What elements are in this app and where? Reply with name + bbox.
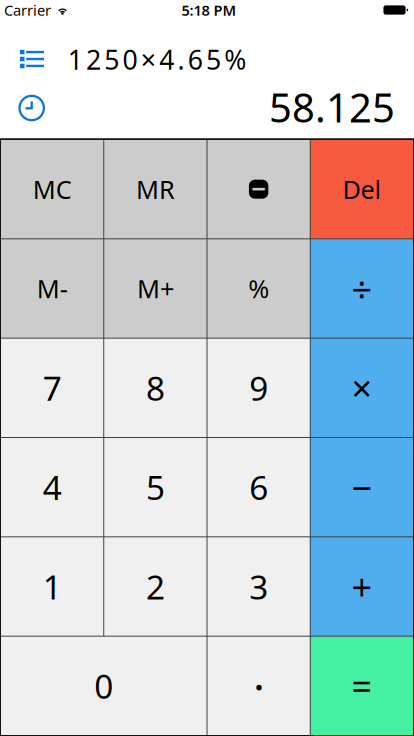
staticText: M+: [137, 272, 174, 305]
button[interactable]: 9: [207, 339, 310, 437]
staticText: 0: [94, 664, 113, 708]
staticText: =: [351, 662, 372, 710]
staticText: %: [248, 272, 269, 305]
button[interactable]: 8: [104, 339, 206, 437]
staticText: 1: [43, 564, 62, 609]
button[interactable]: ÷: [311, 239, 413, 338]
staticText: M-: [37, 272, 68, 305]
button[interactable]: MR: [104, 140, 206, 238]
button[interactable]: MC: [1, 140, 103, 238]
button[interactable]: 2: [104, 537, 206, 636]
staticText: Carrier: [4, 0, 51, 20]
staticText: 5: [146, 465, 165, 509]
button[interactable]: Recent calculations: [10, 90, 54, 126]
button[interactable]: ×: [311, 339, 413, 437]
button[interactable]: 1: [1, 537, 103, 636]
button[interactable]: M+: [104, 239, 206, 338]
button[interactable]: +: [311, 537, 413, 636]
staticText: MR: [136, 172, 175, 206]
staticText: 58.125: [269, 80, 395, 133]
staticText: 8: [146, 366, 165, 410]
staticText: −: [351, 463, 372, 511]
button[interactable]: 3: [207, 537, 310, 636]
button[interactable]: %: [207, 239, 310, 338]
button[interactable]: =: [311, 637, 413, 735]
staticText: Del: [342, 172, 381, 206]
staticText: 2: [146, 564, 165, 609]
button[interactable]: 0: [1, 637, 206, 735]
button[interactable]: 5: [104, 438, 206, 536]
staticText: ÷: [351, 265, 372, 312]
button[interactable]: 7: [1, 339, 103, 437]
staticText: ·: [253, 657, 264, 714]
button[interactable]: History: [10, 42, 54, 76]
staticText: 6: [249, 465, 268, 509]
staticText: ×: [351, 364, 372, 412]
button[interactable]: −: [311, 438, 413, 536]
staticText: MC: [33, 172, 72, 206]
button[interactable]: M-: [1, 239, 103, 338]
button[interactable]: [207, 140, 310, 238]
staticText: +: [351, 563, 372, 610]
button[interactable]: Del: [311, 140, 413, 238]
staticText: 9: [249, 366, 268, 410]
button[interactable]: 4: [1, 438, 103, 536]
button[interactable]: ·: [207, 637, 310, 735]
staticText: 3: [249, 564, 268, 609]
staticText: 1250×4.65%: [68, 42, 246, 77]
button[interactable]: 6: [207, 438, 310, 536]
staticText: 7: [43, 366, 62, 410]
staticText: 4: [43, 465, 62, 509]
staticText: 5:18 PM: [181, 0, 236, 20]
